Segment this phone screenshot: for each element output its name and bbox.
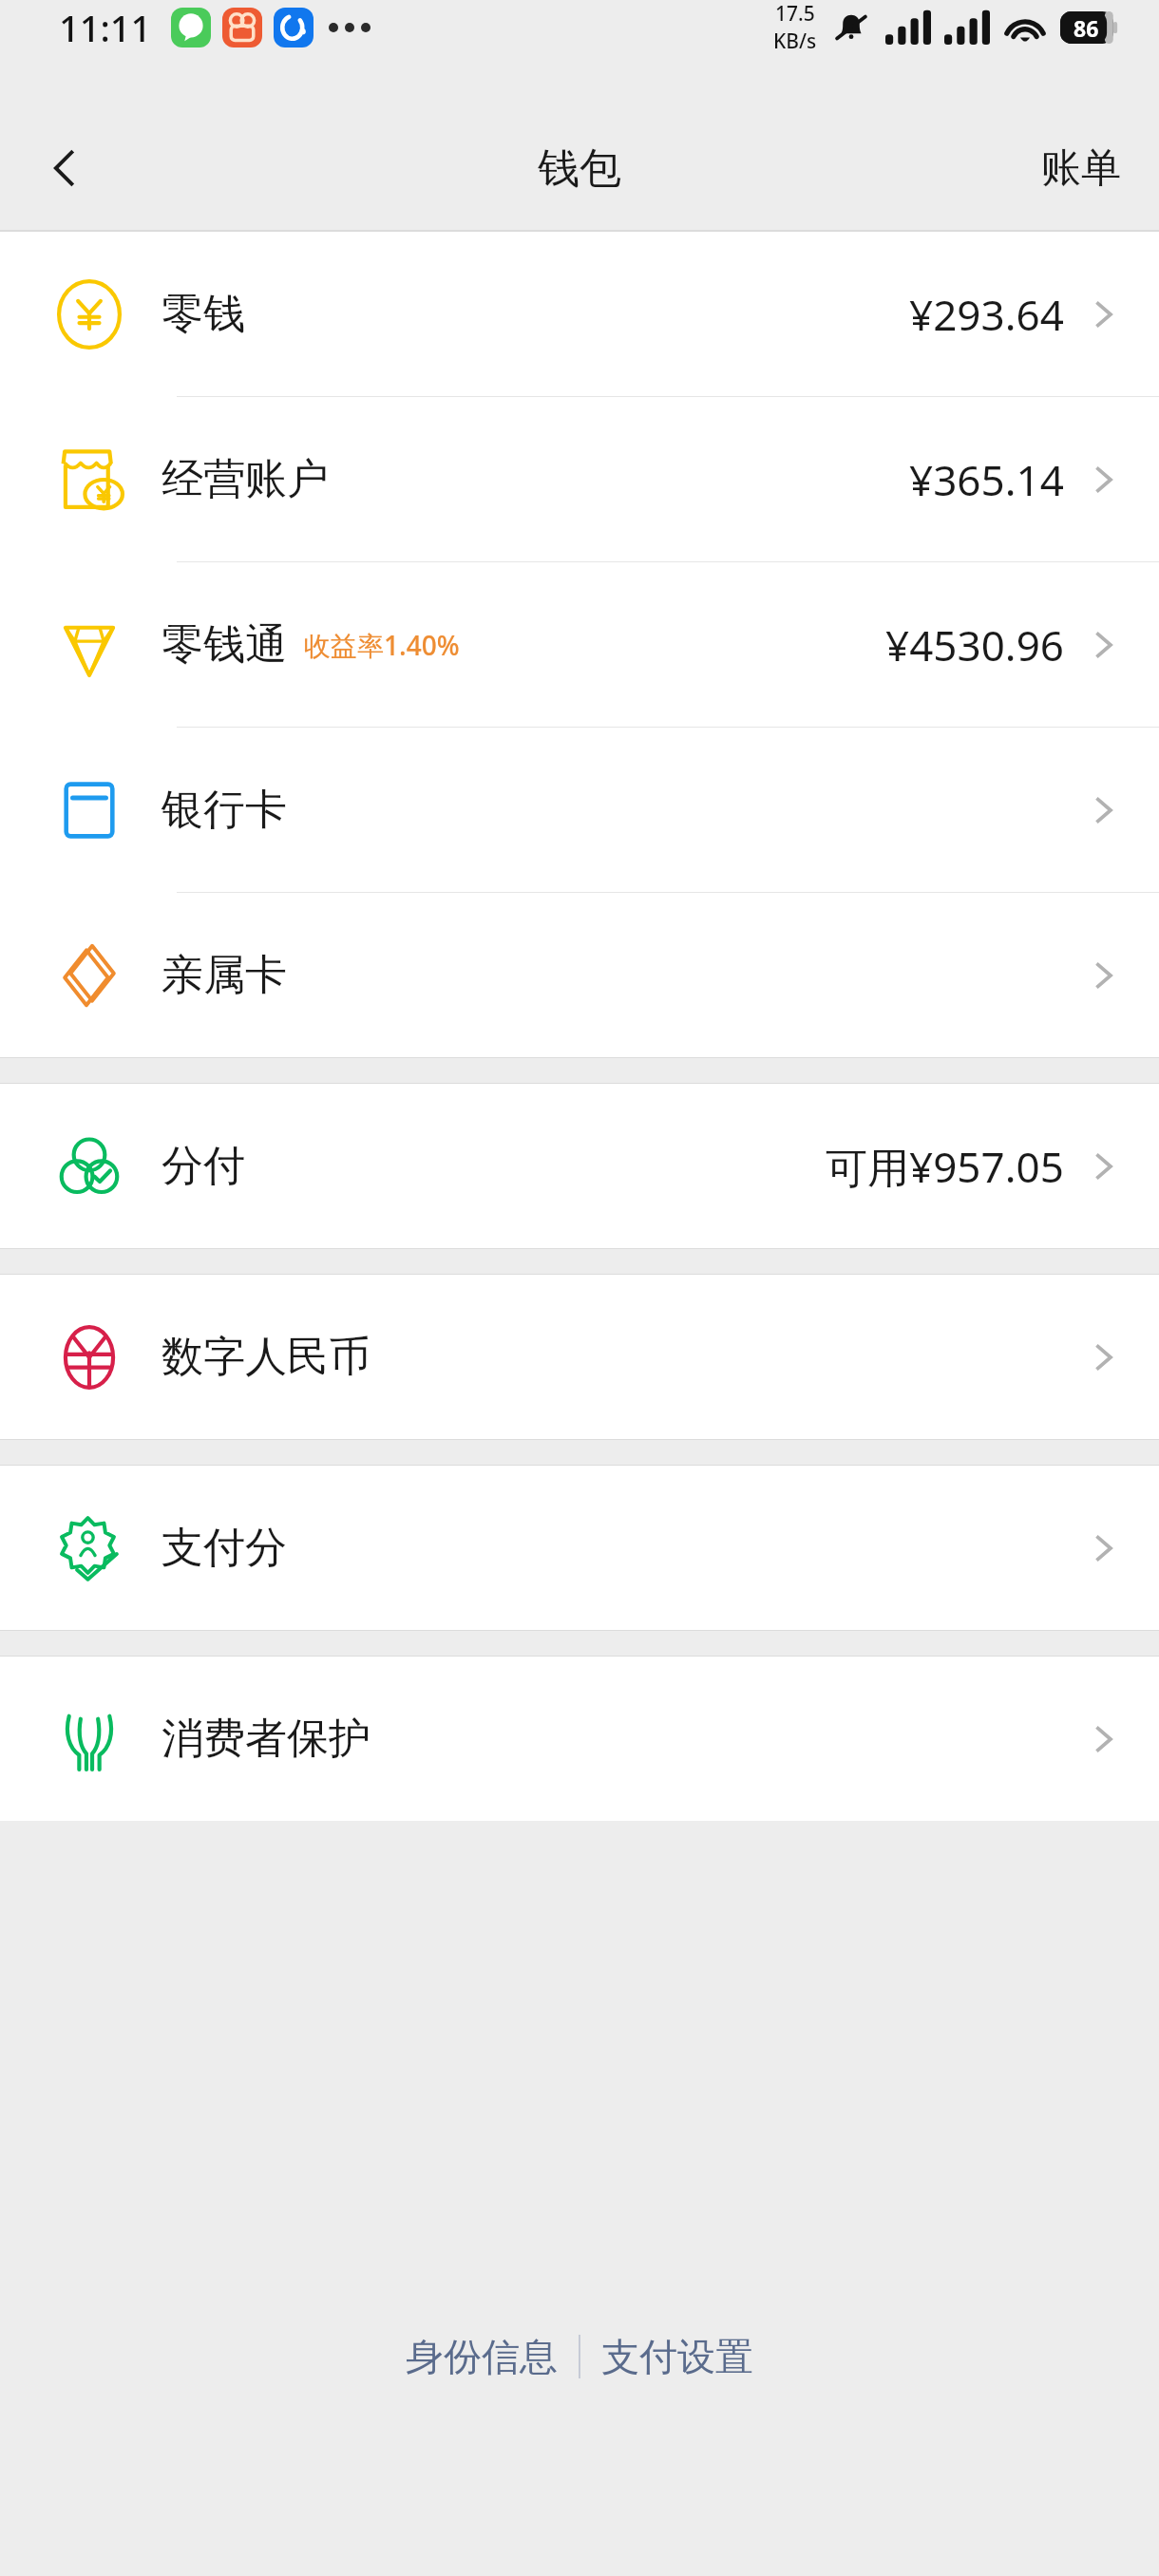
staticText: 分付 bbox=[161, 1140, 245, 1192]
staticText: 钱包 bbox=[538, 142, 621, 195]
staticText: 亲属卡 bbox=[161, 949, 287, 1001]
staticText: ¥365.14 bbox=[909, 451, 1064, 508]
button[interactable]: 消费者保护 bbox=[0, 1657, 1159, 1821]
staticText: 17.5 bbox=[775, 0, 815, 28]
staticText: 银行卡 bbox=[161, 784, 287, 836]
button[interactable]: 亲属卡 bbox=[0, 893, 1159, 1057]
button[interactable]: 账单 bbox=[1028, 128, 1134, 209]
staticText: 零钱通 bbox=[161, 618, 287, 671]
staticText: ¥4530.96 bbox=[885, 616, 1064, 673]
button[interactable]: 零钱 bbox=[0, 232, 1159, 397]
staticText: 86 bbox=[1073, 13, 1099, 43]
button[interactable]: 身份信息 bbox=[385, 2318, 579, 2396]
button[interactable]: 零钱通 bbox=[0, 562, 1159, 728]
button[interactable]: 数字人民币 bbox=[0, 1275, 1159, 1439]
button[interactable]: 分付 bbox=[0, 1084, 1159, 1248]
staticText: 可用¥957.05 bbox=[826, 1138, 1064, 1195]
staticText: 支付分 bbox=[161, 1522, 287, 1574]
button[interactable]: Back bbox=[19, 123, 110, 214]
button[interactable]: 支付分 bbox=[0, 1466, 1159, 1630]
button[interactable]: 经营账户 bbox=[0, 397, 1159, 562]
staticText: 数字人民币 bbox=[161, 1331, 370, 1383]
staticText: 经营账户 bbox=[161, 453, 329, 505]
staticText: 账单 bbox=[1041, 143, 1121, 194]
staticText: 支付设置 bbox=[601, 2333, 753, 2380]
button[interactable]: 支付设置 bbox=[580, 2318, 774, 2396]
staticText: 消费者保护 bbox=[161, 1713, 370, 1765]
staticText: 零钱 bbox=[161, 288, 245, 340]
staticText: 身份信息 bbox=[406, 2333, 558, 2380]
staticText: ¥293.64 bbox=[909, 286, 1064, 343]
staticText: 11:11 bbox=[59, 3, 152, 52]
staticText: KB/s bbox=[773, 28, 817, 55]
staticText: 收益率1.40% bbox=[304, 627, 460, 663]
button[interactable]: 银行卡 bbox=[0, 728, 1159, 893]
